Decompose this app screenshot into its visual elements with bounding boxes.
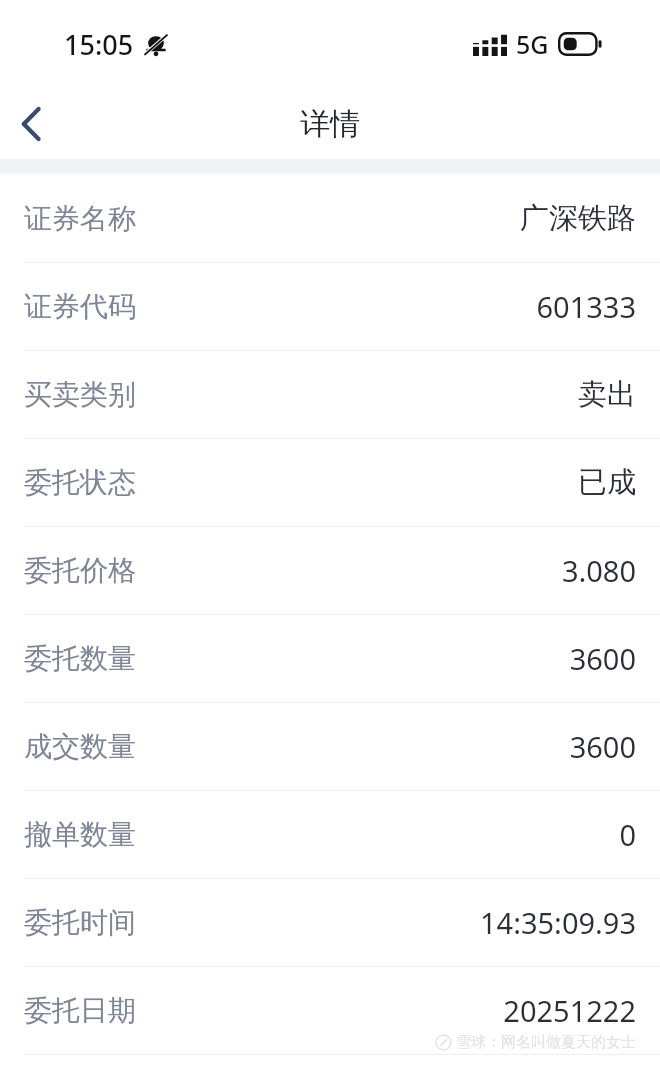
staticText: 广深铁路	[520, 200, 636, 237]
staticText: 委托日期	[24, 993, 136, 1028]
staticText: 5G	[516, 27, 549, 61]
staticText: 雪球：网名叫做夏天的女士	[456, 1033, 636, 1052]
button[interactable]: 证券代码	[0, 263, 660, 350]
staticText: 14:35:09.93	[479, 903, 636, 942]
staticText: 委托价格	[24, 553, 136, 588]
staticText: 15:05	[64, 26, 134, 63]
staticText: 成交数量	[24, 729, 136, 764]
staticText: 已成	[578, 464, 636, 501]
staticText: 3.080	[561, 551, 636, 590]
staticText: 20251222	[503, 991, 636, 1030]
button[interactable]: 证券名称	[0, 175, 660, 262]
staticText: 委托时间	[24, 905, 136, 940]
button[interactable]: 成交数量	[0, 703, 660, 790]
staticText: 卖出	[578, 376, 636, 413]
button[interactable]: 委托日期	[0, 967, 660, 1054]
staticText: 证券代码	[24, 289, 136, 324]
staticText: 3600	[569, 639, 636, 678]
staticText: 委托状态	[24, 465, 136, 500]
button[interactable]: 撤单数量	[0, 791, 660, 878]
staticText: 证券名称	[24, 201, 136, 236]
staticText: 3600	[569, 727, 636, 766]
button[interactable]: 委托时间	[0, 879, 660, 966]
button[interactable]: 委托价格	[0, 527, 660, 614]
button[interactable]: Back	[0, 93, 62, 155]
staticText: 委托数量	[24, 641, 136, 676]
staticText: 0	[619, 815, 636, 854]
staticText: 撤单数量	[24, 817, 136, 852]
button[interactable]: 买卖类别	[0, 351, 660, 438]
button[interactable]: 委托数量	[0, 615, 660, 702]
staticText: 详情	[300, 105, 360, 143]
button[interactable]: 委托状态	[0, 439, 660, 526]
staticText: 601333	[536, 287, 636, 326]
staticText: 买卖类别	[24, 377, 136, 412]
